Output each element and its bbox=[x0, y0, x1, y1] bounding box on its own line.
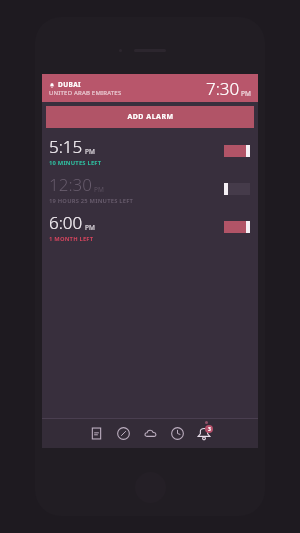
button[interactable]: 5:15 bbox=[42, 132, 258, 170]
staticText: 1 MONTH LEFT bbox=[49, 235, 94, 243]
staticText: 7:30 bbox=[206, 77, 240, 100]
button[interactable]: Alarm on bbox=[224, 221, 250, 233]
staticText: UNITED ARAB EMIRATES bbox=[49, 89, 122, 97]
staticText: 19 HOURS 25 MINUTES LEFT bbox=[49, 197, 134, 205]
button[interactable]: ADD ALARM bbox=[46, 106, 254, 128]
button[interactable]: 12:30 bbox=[42, 170, 258, 208]
button[interactable]: Compass bbox=[113, 423, 133, 443]
button[interactable]: 6:00 bbox=[42, 208, 258, 246]
button[interactable]: Alarms, 3 notifications bbox=[194, 423, 214, 443]
button[interactable]: Weather bbox=[140, 423, 160, 443]
button[interactable]: Alarm on bbox=[224, 145, 250, 157]
staticText: PM bbox=[85, 223, 95, 232]
staticText: PM bbox=[94, 185, 104, 194]
staticText: DUBAI bbox=[58, 80, 82, 89]
staticText: PM bbox=[241, 89, 251, 98]
button[interactable]: Alarm off bbox=[224, 183, 250, 195]
staticText: 10 MINUTES LEFT bbox=[49, 159, 102, 167]
staticText: 5:15 bbox=[49, 135, 83, 158]
button[interactable]: News bbox=[86, 423, 106, 443]
staticText: 3 bbox=[208, 426, 211, 433]
staticText: ADD ALARM bbox=[127, 112, 174, 122]
button[interactable]: Clock bbox=[167, 423, 187, 443]
staticText: PM bbox=[85, 147, 95, 156]
staticText: 12:30 bbox=[49, 173, 92, 196]
staticText: 6:00 bbox=[49, 211, 83, 234]
button[interactable]: DUBAI bbox=[42, 74, 258, 102]
